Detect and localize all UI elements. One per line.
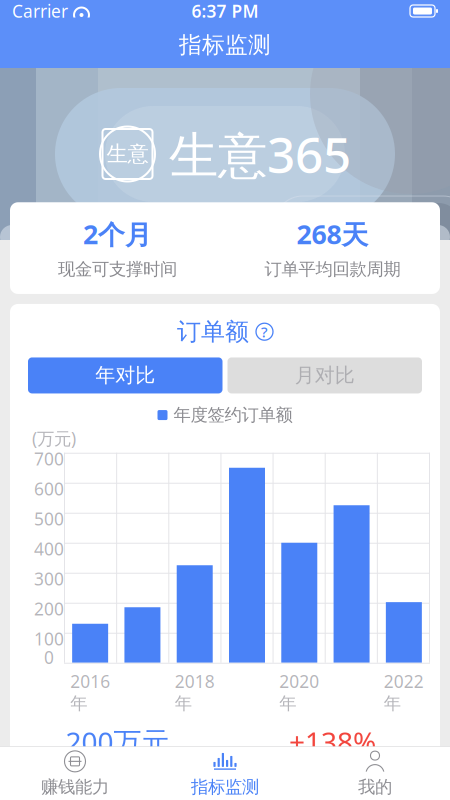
staticText: 2016年 [70,670,110,714]
staticText: 生意365 [169,121,351,187]
staticText: 200万元 [65,723,169,760]
button[interactable]: 赚钱能力 [0,744,150,800]
staticText: 订单额 [177,317,249,346]
staticText: 现金可支撑时间 [58,259,177,280]
staticText: 年对比 [95,363,155,388]
staticText: +138% [289,723,376,760]
staticText: 赚钱能力 [41,776,109,798]
staticText: 年度签约订单额 [173,404,292,426]
button[interactable]: 我的 [300,744,450,800]
staticText: 指标监测 [191,776,259,798]
staticText: 6:37 PM [191,0,258,22]
button[interactable]: 指标监测 [150,744,300,800]
staticText: 2022年 [384,670,424,714]
staticText: Carrier [12,0,68,22]
staticText: 生意 [106,141,148,167]
button[interactable]: 年对比 [28,357,222,393]
staticText: 我的 [358,776,392,798]
staticText: 200 [34,597,64,620]
staticText: 700 [34,447,64,470]
staticText: 月对比 [295,363,355,388]
staticText: 600 [34,477,64,500]
staticText: 100 [34,627,64,650]
staticText: 2020年 [279,670,319,714]
staticText: 0 [44,646,54,669]
staticText: 300 [34,567,64,590]
staticText: 268天 [296,216,368,252]
staticText: (万元) [32,427,76,450]
staticText: 400 [34,537,64,560]
staticText: 指标监测 [179,31,271,59]
staticText: 500 [34,507,64,530]
staticText: 订单平均回款周期 [264,259,400,280]
staticText: 2018年 [175,670,215,714]
button[interactable]: 订单额说明 [256,323,273,340]
staticText: ? [261,322,268,341]
staticText: 2个月 [83,216,152,252]
button[interactable]: 月对比 [227,357,422,393]
button[interactable]: 指标监测 [0,22,450,68]
